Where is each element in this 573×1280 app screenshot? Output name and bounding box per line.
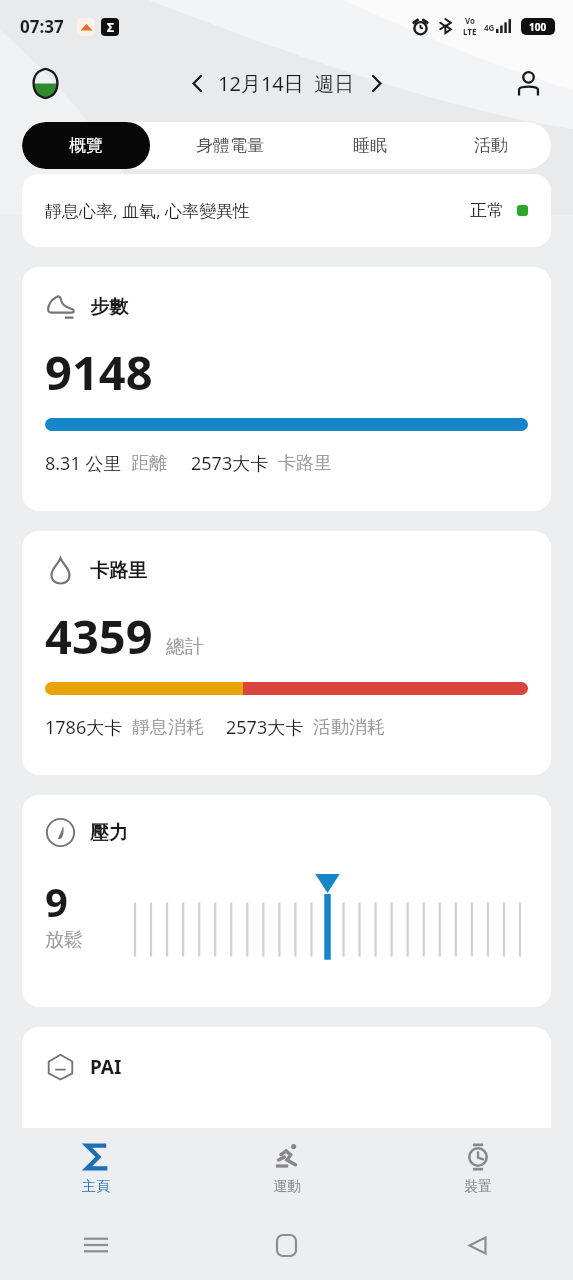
button[interactable]: 主頁 <box>0 1128 191 1210</box>
button[interactable]: 靜息心率, 血氧, 心率變異性 <box>22 174 551 247</box>
staticText: 壓力 <box>90 821 128 845</box>
staticText: 運動 <box>273 1178 301 1196</box>
staticText: 身體電量 <box>196 135 264 156</box>
button[interactable]: Home <box>191 1210 382 1280</box>
button[interactable]: PAI <box>22 1027 551 1157</box>
button[interactable]: 概覽 <box>22 122 150 169</box>
staticText: 主頁 <box>82 1178 110 1196</box>
staticText: 活動消耗 <box>313 716 385 739</box>
staticText: 放鬆 <box>45 928 83 952</box>
staticText: Vo <box>465 15 476 26</box>
button[interactable]: 卡路里 <box>22 531 551 775</box>
staticText: 卡路里 <box>278 452 332 475</box>
staticText: 步數 <box>90 295 128 319</box>
button[interactable]: 裝置 <box>382 1128 573 1210</box>
button[interactable]: 活動 <box>430 122 551 169</box>
button[interactable]: 運動 <box>191 1128 382 1210</box>
button[interactable]: 步數 <box>22 267 551 511</box>
staticText: 8.31 公里 <box>45 451 122 476</box>
staticText: 靜息消耗 <box>132 716 204 739</box>
staticText: 睡眠 <box>353 135 387 156</box>
button[interactable]: 身體電量 <box>150 122 309 169</box>
staticText: 正常 <box>470 200 504 221</box>
button[interactable]: Profile <box>505 60 551 106</box>
staticText: 靜息心率, 血氧, 心率變異性 <box>45 199 250 222</box>
button[interactable]: 壓力 <box>22 795 551 1007</box>
staticText: 1786大卡 <box>45 715 123 740</box>
staticText: 9148 <box>45 340 153 404</box>
staticText: 100 <box>529 20 547 34</box>
staticText: 裝置 <box>464 1178 492 1196</box>
staticText: 卡路里 <box>90 559 147 583</box>
staticText: 12月14日 週日 <box>218 70 355 97</box>
button[interactable]: Next day <box>355 62 397 104</box>
button[interactable]: Device <box>22 60 68 106</box>
staticText: 07:37 <box>20 15 64 38</box>
staticText: LTE <box>463 26 477 37</box>
staticText: 2573大卡 <box>226 715 304 740</box>
button[interactable]: 睡眠 <box>309 122 430 169</box>
staticText: 距離 <box>131 452 167 475</box>
staticText: 4G <box>484 22 495 33</box>
staticText: PAI <box>90 1054 122 1080</box>
staticText: 9 <box>45 874 68 928</box>
staticText: 4359 <box>45 604 153 668</box>
button[interactable]: Previous day <box>176 62 218 104</box>
staticText: 概覽 <box>69 135 103 156</box>
staticText: 2573大卡 <box>191 451 269 476</box>
staticText: 總計 <box>166 635 204 659</box>
staticText: 活動 <box>474 135 508 156</box>
staticText: Σ <box>107 19 114 35</box>
button[interactable]: Recents <box>0 1210 191 1280</box>
button[interactable]: Back <box>382 1210 573 1280</box>
